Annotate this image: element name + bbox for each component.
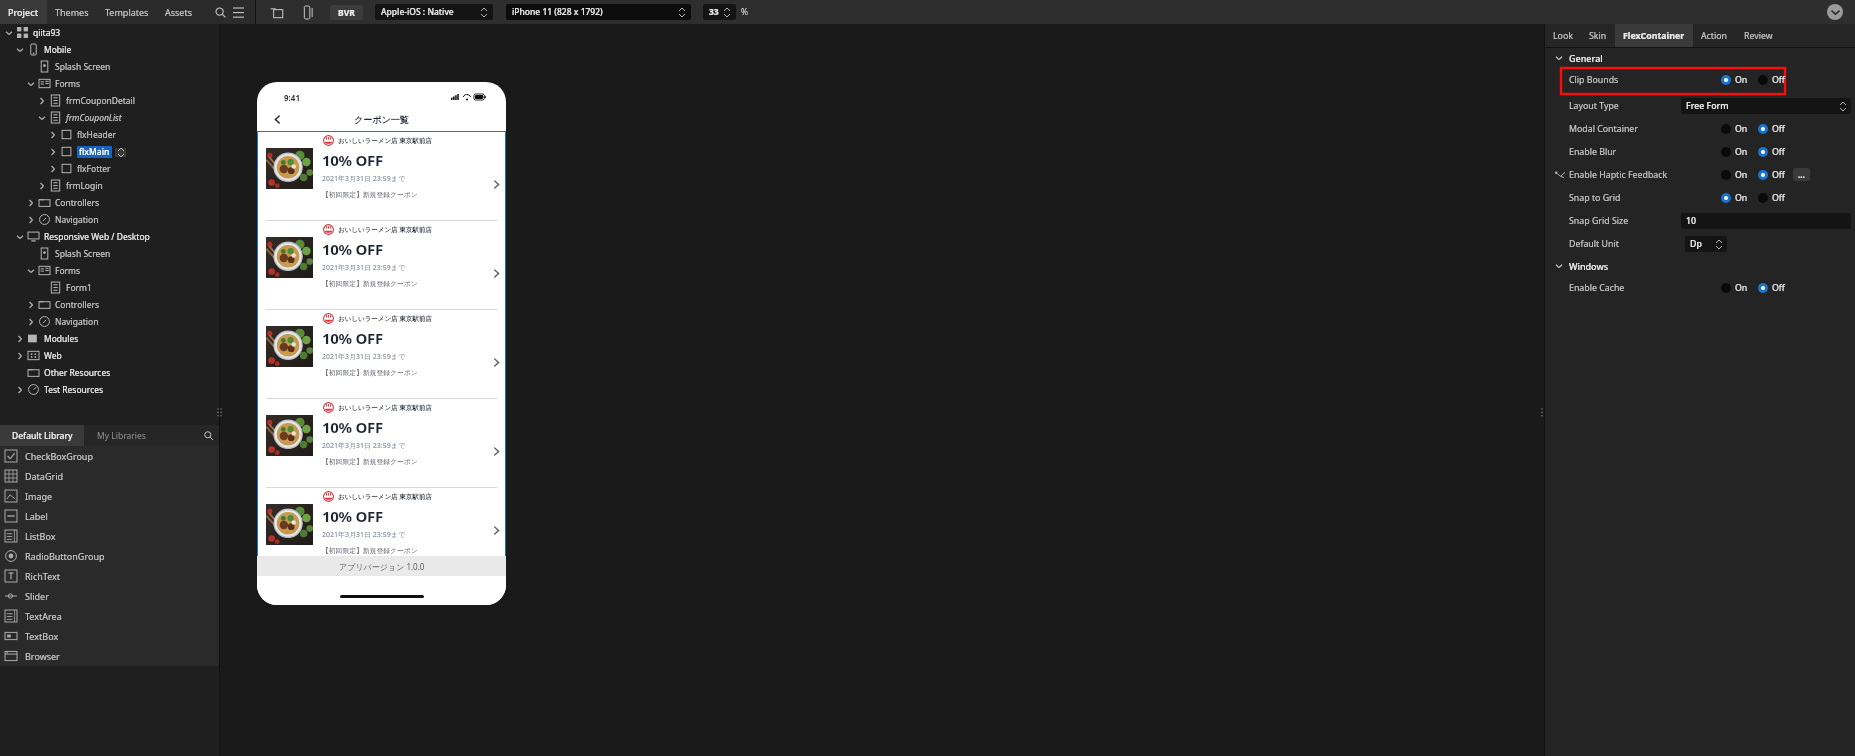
button[interactable]: おいしいラーメン店 東京駅前店 bbox=[257, 399, 506, 488]
staticText: Look bbox=[1553, 30, 1573, 42]
button[interactable]: Browser bbox=[0, 646, 219, 666]
button[interactable] bbox=[1721, 75, 1731, 85]
button[interactable]: Enable Cache bbox=[1545, 276, 1855, 299]
button[interactable]: TextArea bbox=[0, 606, 219, 626]
button[interactable]: Snap Grid Size bbox=[1545, 209, 1855, 232]
button[interactable] bbox=[1721, 170, 1731, 180]
button[interactable]: flxFotter bbox=[0, 160, 219, 177]
button[interactable]: 33 bbox=[703, 4, 736, 20]
button[interactable]: CheckBoxGroup bbox=[0, 446, 219, 466]
button[interactable]: Apple-iOS : Native bbox=[375, 4, 493, 20]
button[interactable]: Review bbox=[1736, 24, 1781, 47]
button[interactable]: Controllers bbox=[0, 296, 219, 313]
button[interactable]: flxMain bbox=[0, 143, 219, 160]
button[interactable]: Layout Type bbox=[1545, 94, 1855, 117]
button[interactable]: Assets bbox=[157, 0, 201, 24]
staticText: frmCouponDetail bbox=[66, 95, 135, 107]
button[interactable]: flxHeader bbox=[0, 126, 219, 143]
staticText: Off bbox=[1772, 192, 1785, 204]
button[interactable]: Look bbox=[1545, 24, 1581, 47]
button[interactable]: qiita93 bbox=[0, 24, 219, 41]
button[interactable]: Controllers bbox=[0, 194, 219, 211]
button[interactable]: iPhone 11 (828 x 1792) bbox=[506, 4, 691, 20]
button[interactable]: My Libraries bbox=[84, 425, 159, 446]
staticText: おいしいラーメン店 東京駅前店 bbox=[338, 492, 432, 501]
button[interactable]: 10 bbox=[1681, 213, 1851, 229]
button[interactable]: RadioButtonGroup bbox=[0, 546, 219, 566]
button[interactable]: Preview bbox=[266, 2, 286, 22]
button[interactable]: Form1 bbox=[0, 279, 219, 296]
button[interactable]: Expand bbox=[1827, 4, 1843, 20]
button[interactable]: Themes bbox=[47, 0, 97, 24]
button[interactable] bbox=[1758, 193, 1768, 203]
button[interactable]: Navigation bbox=[0, 313, 219, 330]
button[interactable]: Clip Bounds bbox=[1545, 68, 1855, 91]
staticText: Browser bbox=[25, 650, 60, 662]
staticText: おいしいラーメン店 東京駅前店 bbox=[338, 136, 432, 145]
button[interactable]: Forms bbox=[0, 262, 219, 279]
button[interactable]: Navigation bbox=[0, 211, 219, 228]
button[interactable]: General bbox=[1545, 48, 1855, 68]
button[interactable]: Modules bbox=[0, 330, 219, 347]
button[interactable]: FlexContainer bbox=[1615, 24, 1693, 47]
button[interactable]: Label bbox=[0, 506, 219, 526]
button[interactable]: TextBox bbox=[0, 626, 219, 646]
button[interactable] bbox=[1758, 124, 1768, 134]
staticText: TextBox bbox=[25, 630, 59, 642]
staticText: Enable Haptic Feedback bbox=[1569, 169, 1668, 181]
button[interactable]: Action bbox=[1693, 24, 1736, 47]
button[interactable]: おいしいラーメン店 東京駅前店 bbox=[257, 221, 506, 310]
button[interactable]: おいしいラーメン店 東京駅前店 bbox=[257, 132, 506, 221]
button[interactable]: Skin bbox=[1581, 24, 1615, 47]
button[interactable]: frmCouponDetail bbox=[0, 92, 219, 109]
button[interactable] bbox=[1721, 147, 1731, 157]
staticText: 【初回限定】新規登録クーポン bbox=[322, 546, 418, 555]
button[interactable]: RichText bbox=[0, 566, 219, 586]
staticText: Apple-iOS : Native bbox=[381, 6, 454, 18]
button[interactable]: Default Library bbox=[0, 425, 84, 446]
button[interactable]: Test Resources bbox=[0, 381, 219, 398]
button[interactable]: Menu bbox=[229, 3, 247, 21]
button[interactable]: Enable Blur bbox=[1545, 140, 1855, 163]
button[interactable]: Snap to Grid bbox=[1545, 186, 1855, 209]
button[interactable]: DataGrid bbox=[0, 466, 219, 486]
button[interactable]: Slider bbox=[0, 586, 219, 606]
button[interactable]: Enable Haptic Feedback bbox=[1545, 163, 1855, 186]
button[interactable]: Dp bbox=[1685, 236, 1727, 252]
button[interactable]: Project bbox=[0, 0, 47, 24]
button[interactable]: Free Form bbox=[1681, 98, 1851, 114]
staticText: On bbox=[1735, 192, 1748, 204]
staticText: FlexContainer bbox=[1623, 30, 1685, 42]
button[interactable]: Windows bbox=[1545, 255, 1855, 276]
button[interactable] bbox=[1721, 124, 1731, 134]
button[interactable]: Forms bbox=[0, 75, 219, 92]
button[interactable] bbox=[1721, 283, 1731, 293]
button[interactable]: Image bbox=[0, 486, 219, 506]
button[interactable] bbox=[1758, 170, 1768, 180]
button[interactable]: おいしいラーメン店 東京駅前店 bbox=[257, 488, 506, 556]
button[interactable]: Options bbox=[115, 148, 126, 157]
button[interactable] bbox=[1758, 75, 1768, 85]
button[interactable]: Splash Screen bbox=[0, 58, 219, 75]
button[interactable]: Responsive Web / Desktop bbox=[0, 228, 219, 245]
button[interactable]: Modal Container bbox=[1545, 117, 1855, 140]
button[interactable]: frmLogin bbox=[0, 177, 219, 194]
button[interactable]: おいしいラーメン店 東京駅前店 bbox=[257, 310, 506, 399]
button[interactable]: frmCouponList bbox=[0, 109, 219, 126]
button[interactable]: ListBox bbox=[0, 526, 219, 546]
button[interactable]: Search bbox=[211, 3, 229, 21]
button[interactable]: Back bbox=[269, 111, 285, 127]
button[interactable]: More options bbox=[1793, 168, 1810, 181]
button[interactable]: Mobile bbox=[0, 41, 219, 58]
button[interactable] bbox=[1758, 147, 1768, 157]
button[interactable]: Device bbox=[298, 2, 318, 22]
button[interactable]: Search library bbox=[198, 425, 219, 446]
button[interactable]: BVR bbox=[330, 5, 363, 20]
button[interactable]: Other Resources bbox=[0, 364, 219, 381]
button[interactable]: Splash Screen bbox=[0, 245, 219, 262]
button[interactable]: Templates bbox=[97, 0, 157, 24]
button[interactable]: Web bbox=[0, 347, 219, 364]
button[interactable]: Default Unit bbox=[1545, 232, 1855, 255]
button[interactable] bbox=[1721, 193, 1731, 203]
button[interactable] bbox=[1758, 283, 1768, 293]
